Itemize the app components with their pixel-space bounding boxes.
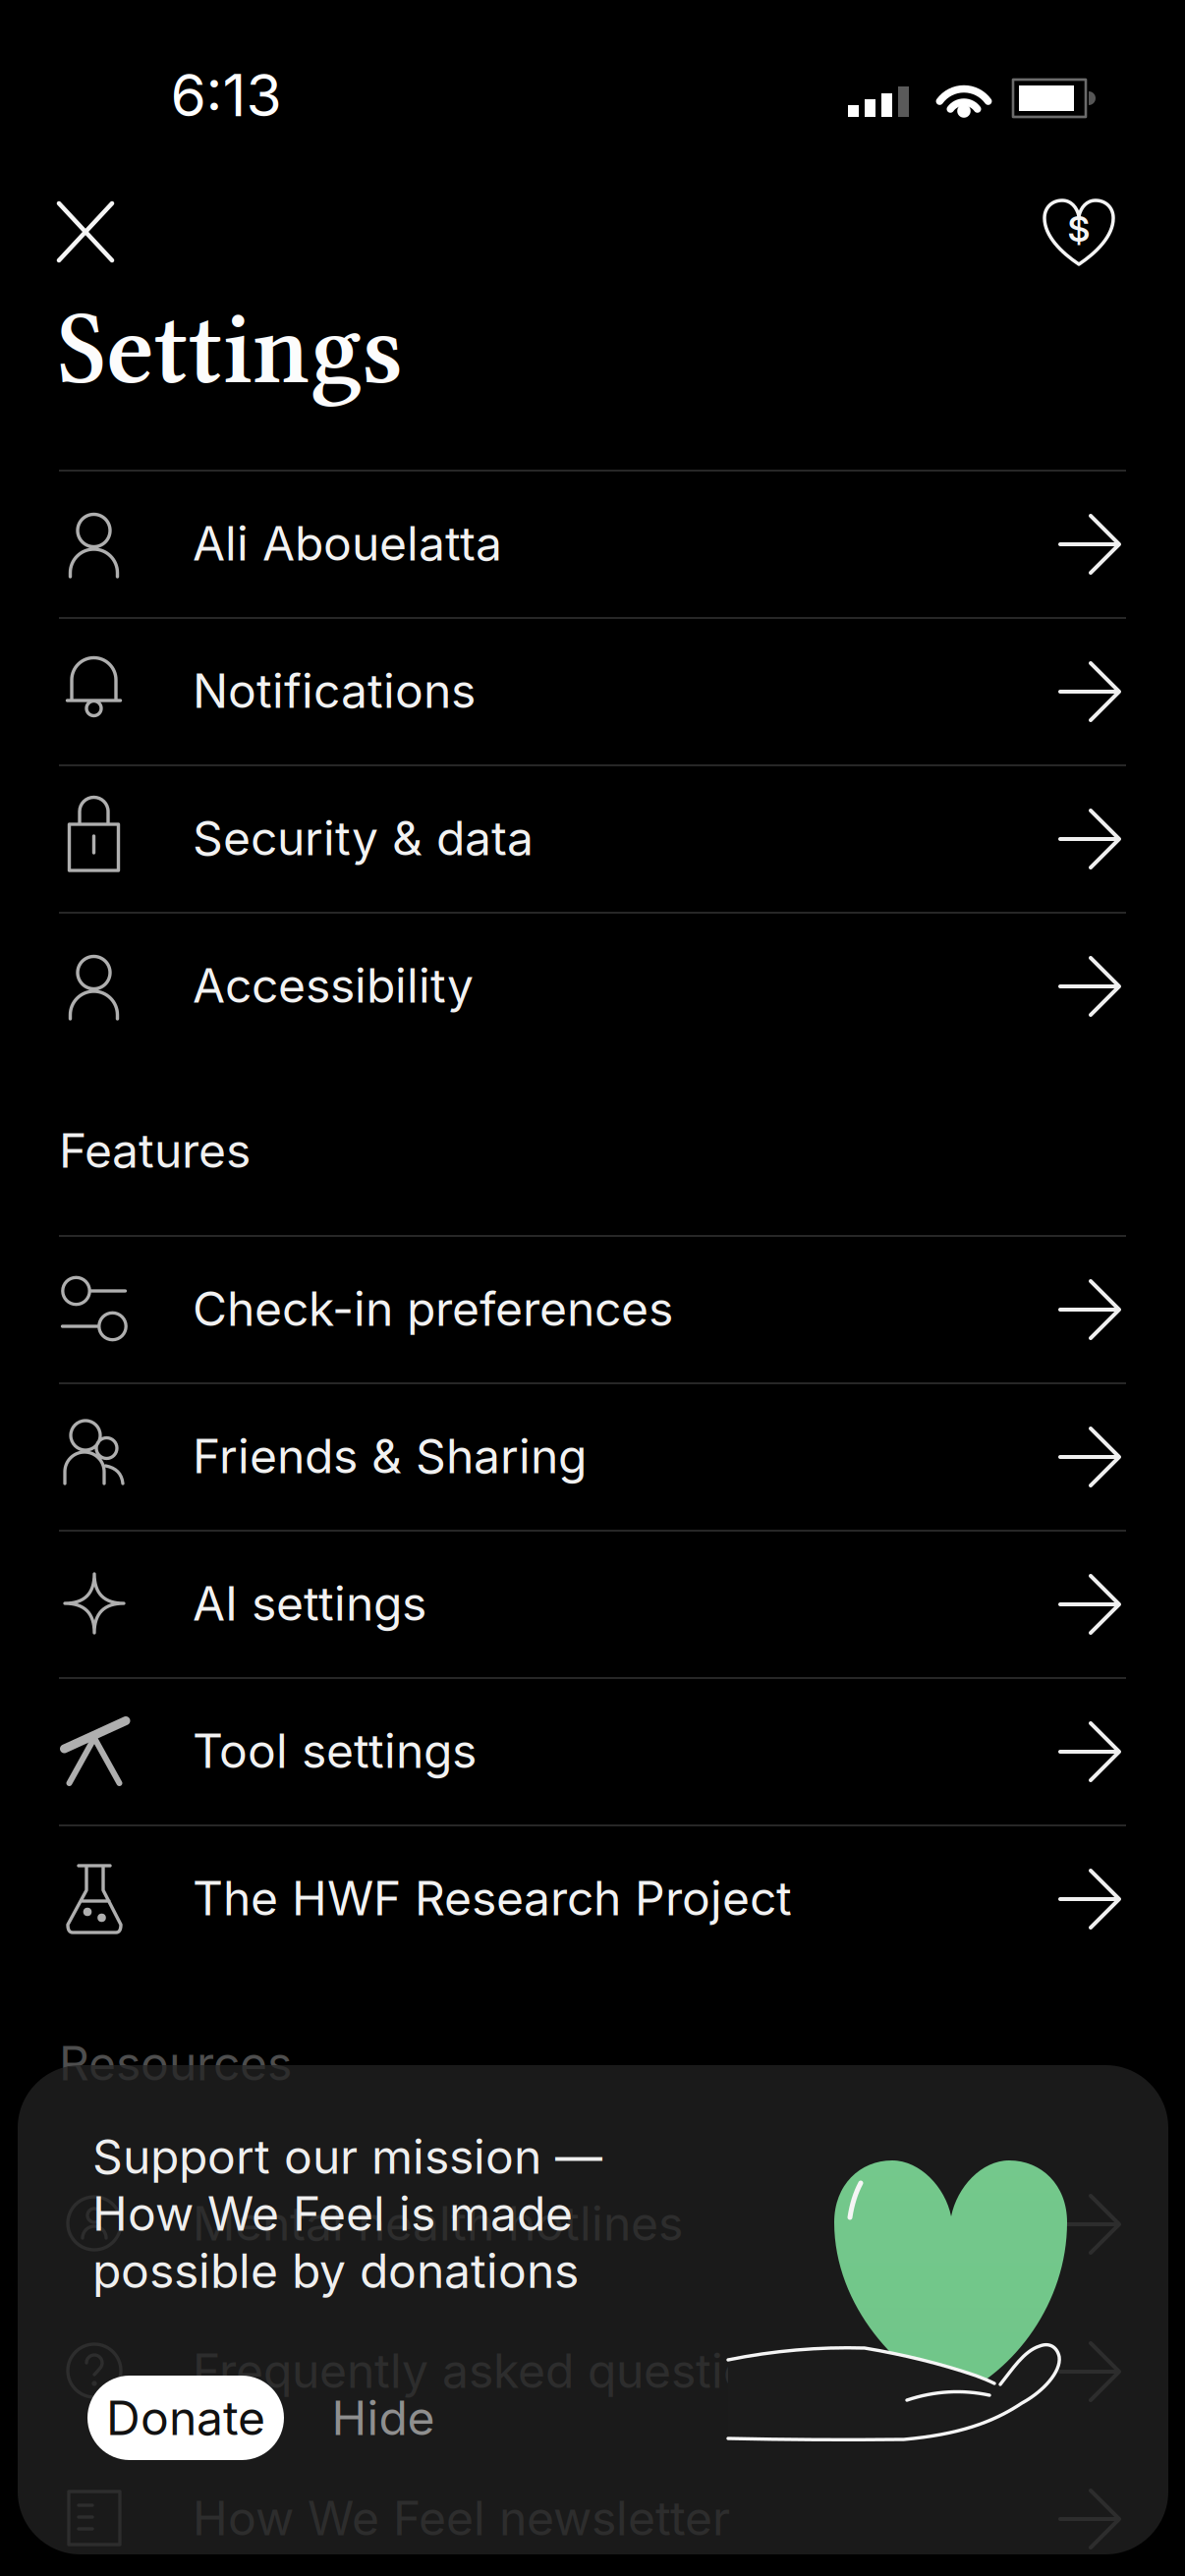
staticText: Donate [106,2389,265,2446]
button[interactable]: $ [1025,177,1133,285]
button[interactable]: Hide [314,2376,452,2460]
staticText: Friends & Sharing [193,1428,587,1485]
staticText: Frequently asked questions [193,2342,804,2399]
button[interactable]: How We Feel newsletter [0,2444,1185,2576]
button[interactable]: Accessibility [0,912,1185,1059]
staticText: Security & data [193,810,534,867]
staticText: The HWF Research Project [193,1870,792,1927]
button[interactable] [28,175,142,289]
button[interactable]: Tool settings [0,1677,1185,1824]
staticText: AI settings [193,1575,426,1632]
staticText: Tool settings [193,1722,477,1779]
staticText: Support our mission — How We Feel is mad… [92,2128,602,2299]
button[interactable]: Security & data [0,764,1185,912]
staticText: How We Feel newsletter [193,2490,730,2547]
button[interactable]: The HWF Research Project [0,1824,1185,1972]
button[interactable]: Ali Abouelatta [0,470,1185,617]
staticText: Settings [57,290,403,408]
button[interactable]: Donate [87,2376,284,2460]
button[interactable]: AI settings [0,1530,1185,1677]
staticText: Accessibility [193,957,474,1014]
button[interactable]: Friends & Sharing [0,1382,1185,1530]
staticText: Features [59,1122,251,1179]
staticText: Mental health hotlines [193,2195,683,2252]
button[interactable]: Frequently asked questions [0,2297,1185,2444]
staticText: Check-in preferences [193,1280,673,1337]
staticText: Ali Abouelatta [193,515,502,572]
button[interactable]: Mental health hotlines [0,2150,1185,2297]
staticText: Hide [332,2389,435,2446]
staticText: $ [1068,207,1090,250]
button[interactable]: Check-in preferences [0,1235,1185,1382]
staticText: Resources [59,2035,292,2092]
staticText: 6:13 [170,60,282,130]
button[interactable]: Notifications [0,617,1185,764]
staticText: Notifications [193,662,476,719]
